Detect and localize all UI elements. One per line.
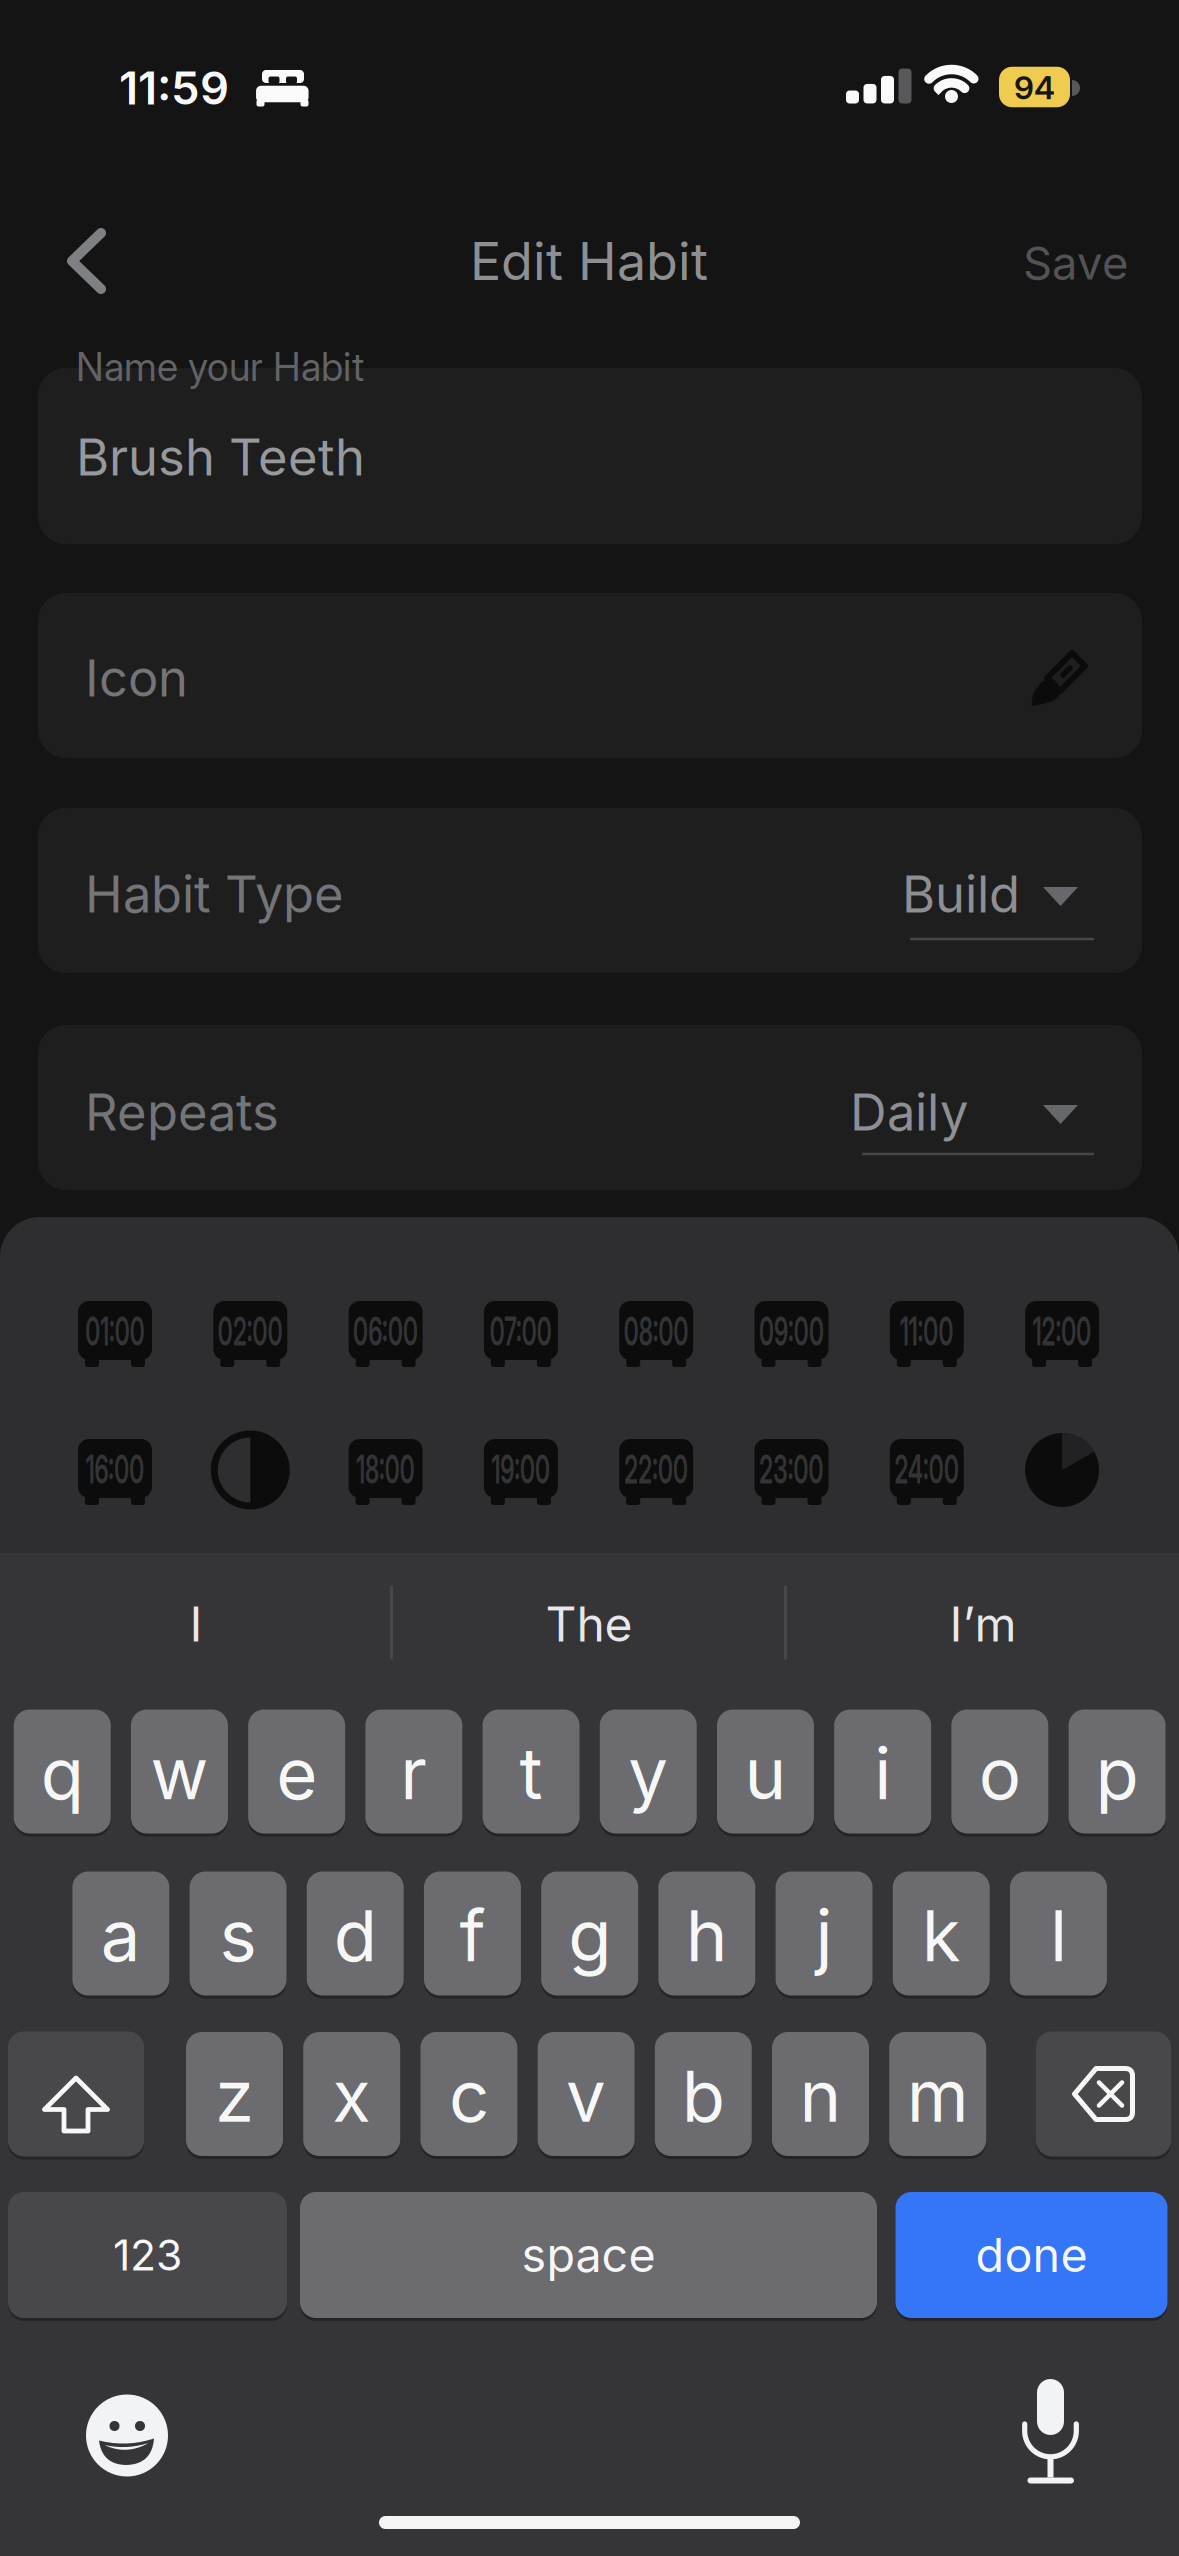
button[interactable]: Shift [8,2030,144,2158]
staticText: Repeats [85,1082,279,1142]
staticText: f [459,1894,485,1977]
button[interactable]: Delete [1036,2030,1171,2158]
button[interactable]: Brush Teeth [38,368,1142,544]
button[interactable]: h [658,1870,755,1997]
staticText: 11:59 [119,61,229,115]
button[interactable]: x [303,2030,400,2157]
staticText: u [744,1732,786,1815]
button[interactable]: done [895,2190,1167,2319]
button[interactable]: 02:00 [213,1301,287,1367]
button[interactable]: 11:00 [890,1301,964,1367]
staticText: r [400,1732,427,1815]
button[interactable]: n [772,2030,869,2157]
button[interactable]: m [889,2030,986,2157]
button[interactable]: The [399,1564,779,1684]
staticText: d [334,1894,377,1977]
button[interactable]: k [893,1870,990,1997]
button[interactable]: j [776,1870,873,1997]
button[interactable]: I [6,1564,386,1684]
button[interactable]: t [482,1708,579,1835]
button[interactable]: u [717,1708,814,1835]
staticText: n [799,2054,841,2138]
staticText: q [41,1732,84,1815]
button[interactable]: b [655,2030,752,2157]
button[interactable]: 01:00 [78,1301,152,1367]
button[interactable]: 16:00 [78,1439,152,1505]
button[interactable]: f [424,1870,521,1997]
button[interactable]: e [248,1708,345,1835]
button[interactable]: l [1010,1870,1107,1997]
button[interactable]: a [72,1870,169,1997]
staticText: t [519,1732,542,1815]
button[interactable]: Back [36,221,156,301]
button[interactable]: 06:00 [349,1301,423,1367]
staticText: 12:00 [1012,1307,1113,1355]
staticText: s [220,1894,257,1977]
staticText: b [682,2054,725,2138]
button[interactable]: 12:00 [1025,1301,1099,1367]
staticText: 123 [113,2230,182,2280]
staticText: i [874,1732,891,1815]
button[interactable]: 08:00 [619,1301,693,1367]
staticText: 16:00 [64,1445,165,1493]
button[interactable]: 17:00 [212,1432,288,1508]
staticText: Habit Type [85,864,344,924]
button[interactable]: d [307,1870,404,1997]
button[interactable]: p [1068,1708,1165,1835]
button[interactable]: y [600,1708,697,1835]
button[interactable]: 18:00 [349,1439,423,1505]
button[interactable]: Save [948,223,1128,303]
button[interactable]: w [131,1708,228,1835]
staticText: 22:00 [601,1445,711,1493]
staticText: v [566,2054,606,2138]
staticText: 19:00 [470,1445,571,1493]
button[interactable]: Icon [38,593,1142,758]
button[interactable]: 09:00 [754,1301,828,1367]
staticText: 24:00 [871,1445,982,1493]
button[interactable]: o [951,1708,1048,1835]
staticText: 11:00 [881,1307,973,1355]
staticText: p [1095,1732,1138,1815]
button[interactable]: g [541,1870,638,1997]
button[interactable]: I’m [793,1564,1173,1684]
staticText: h [686,1894,728,1977]
staticText: Edit Habit [470,230,708,292]
staticText: Name your Habit [76,344,364,390]
button[interactable]: Dictate [1010,2378,1090,2483]
staticText: 08:00 [600,1307,712,1355]
staticText: o [979,1732,1021,1815]
staticText: m [907,2054,969,2138]
button[interactable]: z [186,2030,283,2157]
button[interactable]: space [300,2190,877,2319]
button[interactable]: 22:00 [619,1439,693,1505]
button[interactable]: v [538,2030,635,2157]
button[interactable]: q [14,1708,111,1835]
button[interactable]: Repeats [38,1025,1142,1190]
staticText: 06:00 [330,1307,442,1355]
staticText: x [332,2054,371,2138]
staticText: c [449,2054,489,2138]
staticText: g [568,1894,611,1977]
staticText: done [975,2227,1087,2283]
staticText: Brush Teeth [76,427,365,487]
button[interactable]: clock [1024,1432,1100,1508]
button[interactable]: s [190,1870,287,1997]
staticText: 09:00 [735,1307,847,1355]
button[interactable]: 07:00 [484,1301,558,1367]
staticText: z [215,2054,254,2138]
staticText: w [150,1732,208,1815]
button[interactable]: c [420,2030,517,2157]
button[interactable]: Emoji [86,2394,168,2476]
staticText: Save [1023,236,1128,290]
button[interactable]: i [834,1708,931,1835]
button[interactable]: r [365,1708,462,1835]
staticText: Icon [85,648,188,708]
button[interactable]: 19:00 [484,1439,558,1505]
button[interactable]: 23:00 [754,1439,828,1505]
staticText: 02:00 [194,1307,306,1355]
staticText: Daily [850,1082,968,1142]
button[interactable]: 24:00 [890,1439,964,1505]
button[interactable]: Habit Type [38,808,1142,973]
staticText: 94 [1014,69,1055,106]
button[interactable]: 123 [8,2190,287,2319]
